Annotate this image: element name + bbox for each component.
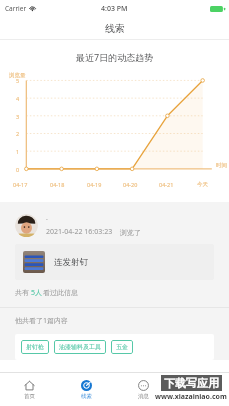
- staticText: 射钉枪: [26, 343, 44, 351]
- button[interactable]: 线索: [58, 373, 115, 406]
- other: 线索: [81, 380, 92, 391]
- button[interactable]: 连发射钉: [15, 244, 214, 280]
- staticText: 连发射钉: [54, 257, 88, 268]
- staticText: 首页: [24, 393, 35, 400]
- staticText: 1: [16, 148, 20, 155]
- staticText: 看过此信息: [43, 288, 78, 297]
- button[interactable]: 首页: [0, 373, 58, 406]
- staticText: 我的: [195, 393, 206, 400]
- staticText: 时间: [216, 162, 227, 169]
- staticText: 04-21: [159, 181, 174, 188]
- staticText: 线索: [105, 22, 125, 35]
- other: 我的: [195, 380, 206, 391]
- staticText: 今天: [197, 181, 208, 188]
- staticText: www.xiazainiao.com: [155, 392, 227, 402]
- staticText: 浏览量: [9, 72, 26, 79]
- other: 消息: [138, 380, 149, 391]
- staticText: 消息: [138, 393, 149, 400]
- staticText: 最近7日的动态趋势: [76, 51, 154, 63]
- staticText: Carrier: [5, 4, 27, 13]
- staticText: 浏览了: [120, 228, 141, 237]
- staticText: 04-18: [50, 181, 65, 188]
- staticText: 2: [16, 130, 20, 137]
- staticText: 2021-04-22 16:03:23: [46, 227, 113, 237]
- staticText: 04-20: [123, 181, 138, 188]
- staticText: 五金: [116, 343, 128, 351]
- staticText: 下载写应用: [164, 376, 219, 390]
- staticText: 油漆辅料及工具: [59, 343, 101, 351]
- staticText: 04-19: [87, 181, 102, 188]
- button[interactable]: 射钉枪: [21, 340, 49, 354]
- staticText: 0: [16, 166, 20, 173]
- staticText: 3: [16, 113, 20, 120]
- button[interactable]: 五金: [111, 340, 133, 354]
- other: 首页: [24, 380, 35, 391]
- button[interactable]: 油漆辅料及工具: [54, 340, 106, 354]
- staticText: 04-17: [13, 181, 28, 188]
- staticText: ·: [46, 215, 48, 225]
- staticText: 5: [16, 77, 20, 84]
- button[interactable]: 我的: [172, 373, 229, 406]
- staticText: 5人: [31, 288, 43, 298]
- staticText: 线索: [81, 393, 92, 400]
- staticText: 4: [16, 95, 20, 102]
- button[interactable]: 消息: [115, 373, 172, 406]
- staticText: 共有: [15, 288, 31, 298]
- staticText: 4:03 PM: [101, 4, 128, 14]
- staticText: 他共看了1篇内容: [15, 316, 69, 326]
